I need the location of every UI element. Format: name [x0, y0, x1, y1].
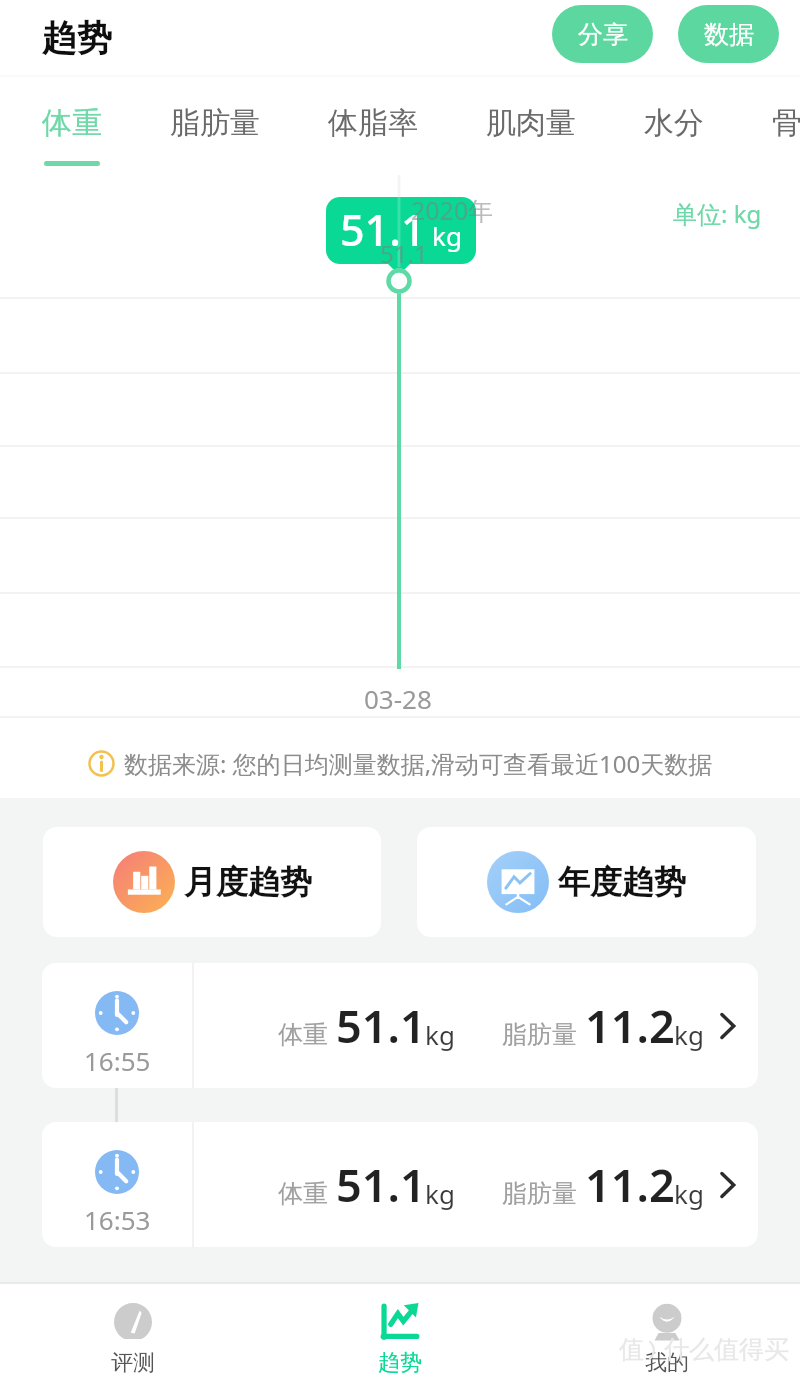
staticText: 骨骼 — [772, 104, 800, 142]
staticText: 11.2 — [585, 1154, 675, 1215]
button[interactable]: 脂肪量 — [170, 75, 260, 175]
staticText: kg — [425, 1176, 455, 1211]
button[interactable]: 水分 — [644, 75, 704, 175]
staticText: 51.1 — [340, 200, 426, 259]
button[interactable]: 16:55 — [42, 963, 758, 1088]
button[interactable]: 体重 — [42, 75, 102, 175]
staticText: 值 — [619, 1334, 644, 1365]
button[interactable]: 查看详情 — [706, 1004, 750, 1048]
staticText: 月度趋势 — [184, 862, 312, 902]
staticText: 数据 — [704, 19, 754, 50]
button[interactable]: 查看详情 — [706, 1163, 750, 1207]
staticText: 51.1 — [336, 995, 426, 1056]
staticText: 51.1 — [380, 237, 428, 270]
button[interactable]: 趋势 — [266, 1284, 533, 1380]
staticText: 体重 — [278, 1178, 328, 1209]
staticText: 水分 — [644, 104, 704, 142]
staticText: 51.1 — [336, 1154, 426, 1215]
staticText: 趋势 — [42, 16, 112, 60]
button[interactable]: 骨骼 — [772, 75, 800, 175]
staticText: 什么值得买 — [664, 1334, 789, 1365]
button[interactable]: 我的 — [533, 1284, 800, 1380]
staticText: kg — [674, 1017, 704, 1052]
staticText: 脂肪量 — [502, 1019, 577, 1050]
staticText: 脂肪量 — [170, 104, 260, 142]
staticText: 单位: kg — [673, 197, 762, 230]
button[interactable]: 体脂率 — [328, 75, 418, 175]
staticText: 我的 — [645, 1349, 689, 1377]
button[interactable]: 年度趋势 — [417, 827, 756, 937]
staticText: 16:53 — [84, 1202, 151, 1237]
staticText: 11.2 — [585, 995, 675, 1056]
staticText: 体重 — [42, 104, 102, 142]
button[interactable]: 肌肉量 — [486, 75, 576, 175]
button[interactable]: 月度趋势 — [43, 827, 381, 937]
staticText: 评测 — [111, 1349, 155, 1377]
button[interactable]: 数据 — [678, 5, 779, 63]
staticText: 数据来源: 您的日均测量数据,滑动可查看最近100天数据 — [124, 747, 713, 780]
staticText: kg — [425, 1017, 455, 1052]
staticText: 脂肪量 — [502, 1178, 577, 1209]
staticText: 2020年 — [411, 193, 494, 227]
staticText: 趋势 — [378, 1349, 422, 1377]
staticText: 分享 — [578, 19, 628, 50]
button[interactable]: 评测 — [0, 1284, 266, 1380]
staticText: 年度趋势 — [558, 862, 686, 902]
staticText: kg — [674, 1176, 704, 1211]
staticText: 体脂率 — [328, 104, 418, 142]
staticText: 体重 — [278, 1019, 328, 1050]
staticText: 16:55 — [84, 1043, 151, 1078]
button[interactable]: 16:53 — [42, 1122, 758, 1247]
staticText: 肌肉量 — [486, 104, 576, 142]
staticText: 03-28 — [364, 681, 432, 716]
staticText: kg — [432, 218, 462, 253]
button[interactable]: 分享 — [552, 5, 653, 63]
